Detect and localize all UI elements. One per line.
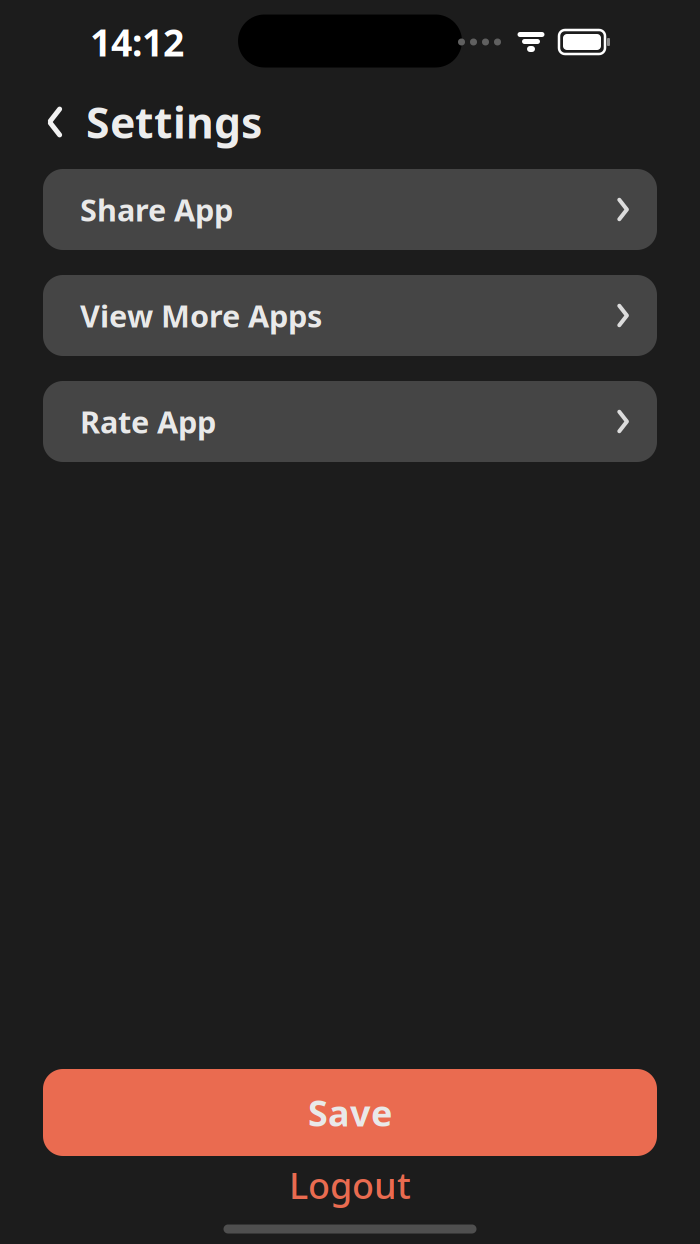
staticText: 14:12 [90,17,184,67]
staticText: Rate App [80,401,216,442]
staticText: Save [308,1089,392,1136]
staticText: Share App [80,189,233,230]
button[interactable]: Rate App [43,381,657,462]
staticText: Settings [86,94,262,150]
button[interactable]: Save [43,1069,657,1156]
button[interactable]: Back [33,100,77,144]
button[interactable]: View More Apps [43,275,657,356]
staticText: View More Apps [80,295,322,336]
button[interactable]: Share App [43,169,657,250]
button[interactable]: Logout [43,1156,657,1214]
staticText: Logout [289,1161,411,1209]
